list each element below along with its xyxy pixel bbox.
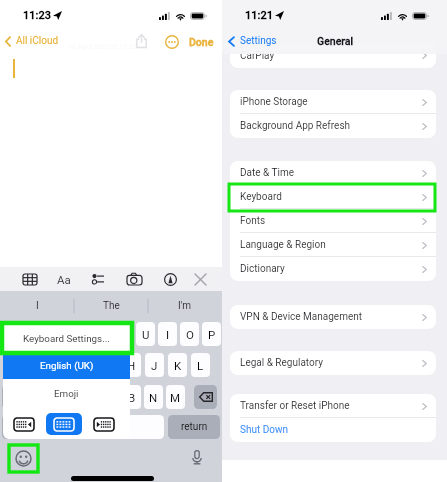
button[interactable]: Checklist <box>87 268 109 290</box>
button[interactable]: J <box>145 353 164 377</box>
staticText: Date & Time <box>240 167 295 179</box>
button[interactable]: Settings <box>228 34 277 48</box>
button[interactable]: G <box>99 353 118 377</box>
button[interactable]: Shut Down <box>230 418 436 442</box>
staticText: English (UK) <box>40 360 94 371</box>
button[interactable]: I'm <box>148 291 222 321</box>
button[interactable]: Dock keyboard left <box>13 413 35 435</box>
staticText: All iCloud <box>16 35 59 47</box>
staticText: iPhone Storage <box>240 96 308 108</box>
button[interactable]: Dock keyboard right <box>93 413 115 435</box>
button[interactable]: English (UK) <box>3 352 130 379</box>
button[interactable]: Camera <box>123 268 145 290</box>
button[interactable]: N <box>144 385 163 409</box>
button[interactable]: E <box>48 322 67 346</box>
button[interactable]: R <box>70 322 89 346</box>
button[interactable]: Dictionary <box>230 257 436 281</box>
button[interactable]: F <box>77 353 95 377</box>
button[interactable]: return <box>168 415 220 439</box>
button[interactable]: Language & Region <box>230 233 436 257</box>
staticText: M <box>170 391 181 404</box>
button[interactable]: L <box>191 353 210 377</box>
button[interactable]: X <box>56 385 75 409</box>
button[interactable]: Markup <box>159 268 181 290</box>
button[interactable]: All iCloud <box>5 34 59 48</box>
staticText: Keyboard Settings... <box>23 333 110 344</box>
staticText: Dictionary <box>240 263 285 275</box>
staticText: T <box>98 328 105 341</box>
staticText: O <box>186 328 194 341</box>
button[interactable]: Text format <box>53 268 75 290</box>
staticText: Background App Refresh <box>240 120 351 132</box>
button[interactable]: Y <box>114 322 133 346</box>
button[interactable]: Date & Time <box>230 161 436 185</box>
button[interactable]: Fonts <box>230 209 436 233</box>
staticText: D <box>60 359 68 372</box>
button[interactable]: K <box>168 353 187 377</box>
button[interactable]: B <box>122 385 141 409</box>
button[interactable]: Full keyboard <box>46 413 82 435</box>
staticText: Done <box>189 36 214 48</box>
staticText: U <box>142 328 150 341</box>
button[interactable]: Keyboard <box>230 185 436 209</box>
staticText: Settings <box>240 35 277 47</box>
staticText: return <box>181 421 208 433</box>
staticText: Aa <box>57 273 71 286</box>
button[interactable]: Transfer or Reset iPhone <box>230 394 436 418</box>
button[interactable]: More options <box>164 34 179 49</box>
button[interactable]: T <box>92 322 111 346</box>
button[interactable]: CarPlay <box>230 43 436 68</box>
button[interactable]: Keyboard Settings... <box>3 325 130 352</box>
button[interactable]: I <box>0 291 74 321</box>
staticText: CarPlay <box>240 50 275 62</box>
button[interactable]: O <box>180 322 199 346</box>
button[interactable]: U <box>136 322 155 346</box>
staticText: The <box>103 300 120 312</box>
button[interactable]: I <box>158 322 177 346</box>
button[interactable]: D <box>55 353 73 377</box>
button[interactable]: H <box>122 353 141 377</box>
button[interactable]: Close keyboard <box>189 268 211 290</box>
staticText: P <box>208 328 216 341</box>
staticText: B <box>128 391 136 404</box>
button[interactable]: Backspace <box>194 385 217 409</box>
staticText: I'm <box>178 300 192 312</box>
button[interactable]: Q <box>2 322 22 346</box>
button[interactable]: 123 <box>2 415 25 439</box>
button[interactable]: Emoji keyboard <box>11 446 36 471</box>
button[interactable]: S <box>33 353 51 377</box>
button[interactable]: W <box>25 322 45 346</box>
staticText: H <box>127 359 136 372</box>
button[interactable]: Dictation <box>187 445 207 469</box>
button[interactable]: M <box>166 385 185 409</box>
staticText: General <box>317 35 354 47</box>
button[interactable]: The <box>74 291 148 321</box>
staticText: S <box>39 359 46 372</box>
button[interactable]: Done <box>189 35 214 48</box>
button[interactable]: iPhone Storage <box>230 90 436 114</box>
button[interactable]: VPN & Device Management <box>230 305 436 329</box>
button[interactable]: A <box>11 353 29 377</box>
button[interactable]: Space <box>28 415 164 439</box>
staticText: X <box>62 391 70 404</box>
staticText: K <box>174 359 182 372</box>
staticText: Fonts <box>240 215 266 227</box>
button[interactable]: P <box>202 322 221 346</box>
staticText: I <box>36 300 39 312</box>
button[interactable]: Emoji <box>3 379 130 408</box>
button[interactable]: Share <box>132 32 150 50</box>
button[interactable]: Table <box>19 268 41 290</box>
button[interactable]: Legal & Regulatory <box>230 351 436 375</box>
button[interactable]: Background App Refresh <box>230 114 436 138</box>
staticText: Shut Down <box>240 424 289 436</box>
staticText: Keyboard <box>240 191 282 203</box>
button[interactable]: Shift <box>2 385 25 409</box>
